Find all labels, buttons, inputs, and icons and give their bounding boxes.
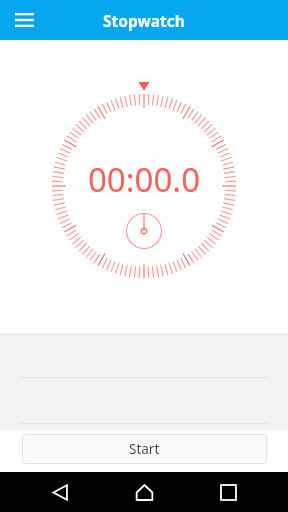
button[interactable]: Home — [120, 472, 168, 512]
button[interactable]: Open navigation menu — [6, 2, 42, 38]
button[interactable]: Start — [22, 434, 267, 464]
staticText: Stopwatch — [103, 10, 185, 31]
button[interactable]: Back — [36, 472, 84, 512]
staticText: 00:00.0 — [0, 157, 288, 202]
staticText: Start — [129, 440, 160, 458]
button[interactable]: 00:00.0 — [0, 40, 288, 334]
button[interactable]: Recent apps — [204, 472, 252, 512]
